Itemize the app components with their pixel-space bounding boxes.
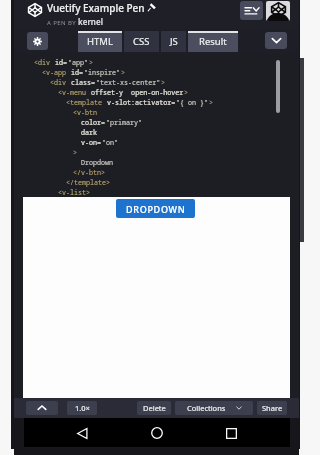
staticText: <v-btn [73, 108, 98, 117]
button[interactable]: Delete [137, 401, 171, 415]
staticText: v-on= [81, 138, 102, 147]
staticText: Delete [143, 403, 166, 413]
staticText: <div [50, 78, 71, 87]
button[interactable]: DROPDOWN [116, 199, 195, 218]
staticText: </template> [66, 178, 111, 187]
staticText: "text-xs-center" [96, 78, 161, 87]
button[interactable]: Result [188, 31, 238, 52]
staticText: Share [262, 403, 283, 413]
staticText: A PEN BY [47, 19, 78, 27]
staticText: id= [55, 58, 68, 67]
staticText: kernel [78, 16, 103, 27]
button[interactable]: Collections [175, 401, 253, 415]
button[interactable]: Home [144, 420, 170, 446]
staticText: class= [71, 78, 96, 87]
staticText: id= [71, 68, 84, 77]
staticText: <div [34, 58, 55, 67]
button[interactable]: JS [161, 31, 186, 52]
staticText: "on" [102, 138, 119, 147]
staticText: <v-menu [58, 88, 91, 97]
staticText: > [184, 88, 189, 97]
staticText: v-slot:activator= [107, 98, 176, 107]
staticText: "{ on }" [176, 98, 209, 107]
button[interactable]: Back [69, 420, 95, 446]
staticText: Collections [187, 403, 226, 413]
staticText: <v-app [42, 68, 71, 77]
button[interactable]: CSS [124, 31, 159, 52]
staticText: HTML [87, 35, 113, 48]
button[interactable]: Pen actions [240, 1, 263, 20]
staticText: <v-list> [58, 188, 91, 197]
button[interactable]: Settings [27, 32, 48, 50]
button[interactable]: 1.0× [67, 401, 97, 415]
button[interactable]: Expand [265, 32, 287, 49]
staticText: "primary" [106, 118, 143, 127]
button[interactable]: Recents [218, 420, 244, 446]
staticText: > [73, 148, 78, 157]
staticText: > [121, 68, 126, 77]
staticText: Result [199, 35, 227, 48]
staticText: Vuetify Example Pen [47, 1, 145, 15]
button[interactable]: Account [266, 1, 290, 21]
button[interactable]: Share [257, 401, 287, 415]
staticText: > [209, 98, 214, 107]
staticText: 1.0× [75, 403, 90, 413]
staticText: CSS [133, 35, 150, 48]
staticText: > [161, 78, 166, 87]
button[interactable] [26, 401, 58, 415]
staticText: JS [170, 35, 178, 48]
staticText: DROPDOWN [126, 203, 186, 215]
staticText: Dropdown [81, 158, 114, 167]
staticText: > [89, 58, 94, 67]
staticText: dark [81, 128, 98, 137]
staticText: </v-btn> [73, 168, 106, 177]
staticText: <template [66, 98, 107, 107]
staticText: "inspire" [84, 68, 121, 77]
staticText: "app" [68, 58, 89, 67]
staticText: offset-y open-on-hover [91, 88, 184, 97]
staticText: color= [81, 118, 106, 127]
button[interactable]: HTML [78, 31, 122, 52]
